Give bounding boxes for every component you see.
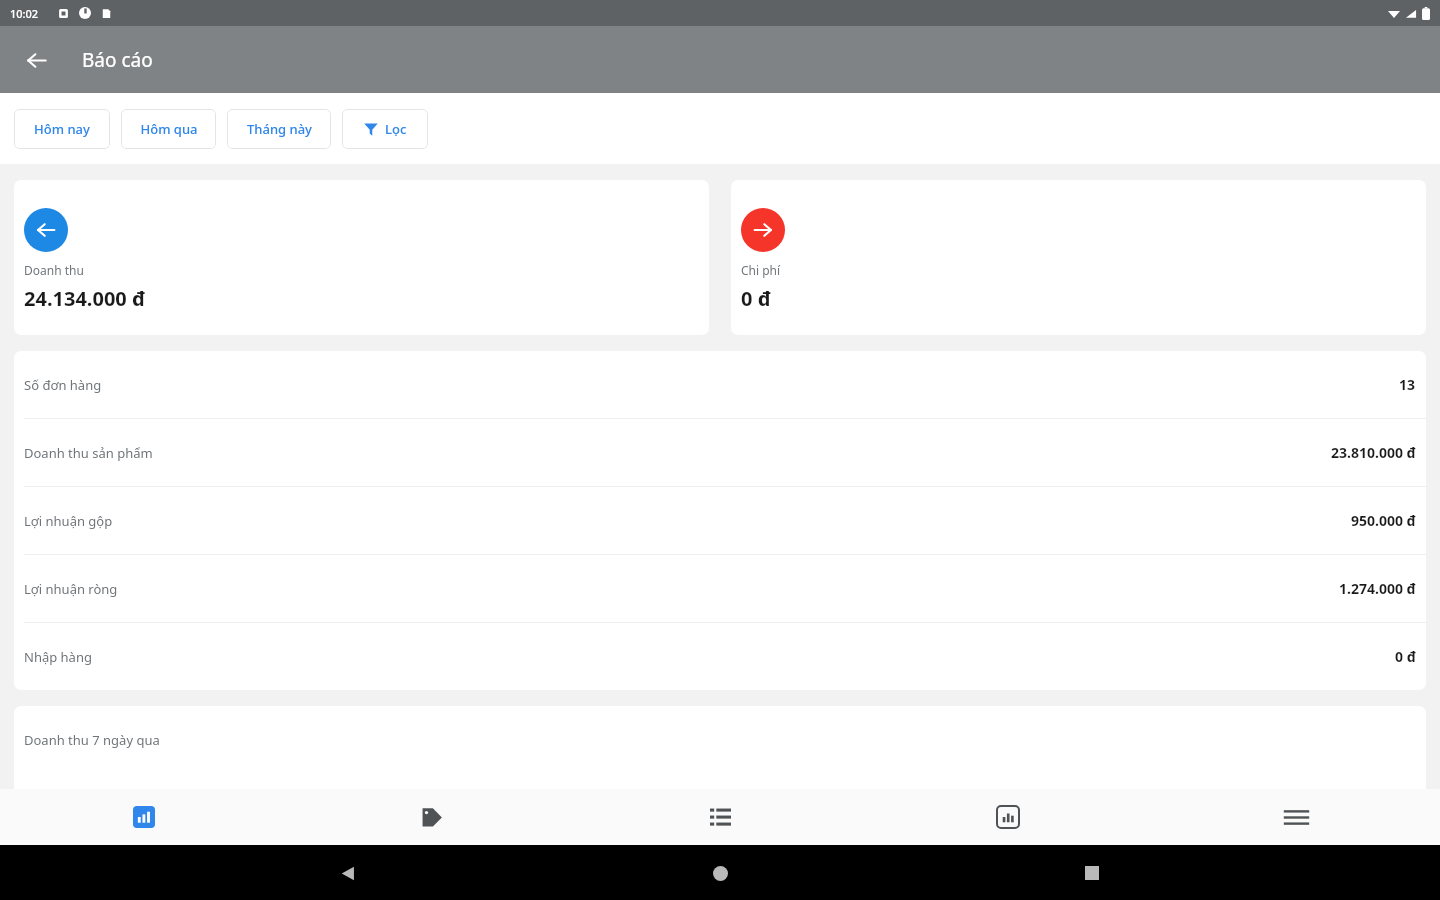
staticText: Lợi nhuận gộp	[24, 512, 113, 530]
button[interactable]: Đơn hàng	[576, 789, 864, 845]
staticText: Nhập hàng	[24, 648, 92, 666]
staticText: 1.274.000 đ	[1339, 579, 1416, 598]
button[interactable]: Nhập hàng	[14, 623, 1426, 690]
staticText: 950.000 đ	[1351, 511, 1416, 530]
button[interactable]: Thống kê	[864, 789, 1152, 845]
button[interactable]: Lọc	[342, 109, 428, 149]
button[interactable]: Back	[324, 849, 372, 897]
button[interactable]: Số đơn hàng	[14, 351, 1426, 418]
staticText: Chi phí	[741, 262, 781, 278]
staticText: 10:02	[10, 6, 39, 21]
button[interactable]: Báo cáo	[0, 789, 288, 845]
staticText: Hôm nay	[34, 120, 90, 138]
staticText: Doanh thu sản phẩm	[24, 444, 153, 462]
button[interactable]: Chi phí	[731, 180, 1426, 335]
button[interactable]: Recent apps	[1068, 849, 1116, 897]
staticText: 0 đ	[741, 285, 771, 312]
staticText: Hôm qua	[140, 120, 198, 138]
button[interactable]: Doanh thu	[14, 180, 709, 335]
button[interactable]: Menu	[1152, 789, 1440, 845]
staticText: 0 đ	[1395, 647, 1416, 666]
staticText: Tháng này	[247, 120, 312, 138]
staticText: Báo cáo	[82, 47, 153, 73]
button[interactable]: Hôm nay	[14, 109, 110, 149]
button[interactable]: Hôm qua	[121, 109, 216, 149]
button[interactable]: Back	[14, 38, 58, 82]
staticText: Lợi nhuận ròng	[24, 580, 118, 598]
staticText: Lọc	[385, 120, 407, 138]
button[interactable]: Sản phẩm	[288, 789, 576, 845]
staticText: 24.134.000 đ	[24, 285, 145, 312]
staticText: 13	[1399, 375, 1416, 394]
staticText: Doanh thu 7 ngày qua	[24, 731, 160, 749]
button[interactable]: Lợi nhuận ròng	[14, 555, 1426, 622]
button[interactable]: Doanh thu sản phẩm	[14, 419, 1426, 486]
button[interactable]: Tháng này	[227, 109, 331, 149]
staticText: Doanh thu	[24, 262, 84, 278]
staticText: Số đơn hàng	[24, 376, 102, 394]
staticText: 23.810.000 đ	[1331, 443, 1416, 462]
button[interactable]: Lợi nhuận gộp	[14, 487, 1426, 554]
button[interactable]: Home	[696, 849, 744, 897]
